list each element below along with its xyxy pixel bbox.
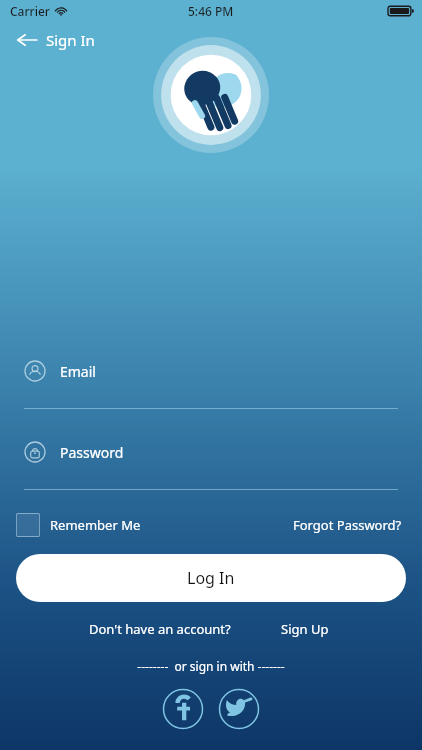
button[interactable]: Forgot Password? (289, 512, 406, 538)
button[interactable]: Sign in with Facebook (162, 688, 204, 730)
staticText: Sign Up (281, 620, 329, 638)
button[interactable]: Log In (16, 554, 406, 602)
staticText: Sign In (46, 30, 95, 50)
button[interactable]: Remember Me (16, 513, 147, 537)
button[interactable]: Email (16, 354, 406, 409)
staticText: -------- or sign in with ------- (16, 658, 406, 674)
staticText: Forgot Password? (293, 516, 402, 534)
button[interactable]: Sign in with Twitter (218, 688, 260, 730)
button[interactable]: Sign Up (277, 618, 333, 640)
staticText: Password (60, 443, 124, 462)
staticText: Email (60, 362, 96, 381)
button[interactable]: Password (16, 435, 406, 490)
staticText: Carrier (10, 3, 50, 19)
staticText: Don't have an account? (89, 620, 231, 638)
staticText: Remember Me (50, 516, 141, 534)
button[interactable]: Back (12, 26, 99, 54)
staticText: 5:46 PM (188, 3, 234, 19)
staticText: Log In (187, 567, 235, 589)
other: Back (16, 29, 38, 51)
